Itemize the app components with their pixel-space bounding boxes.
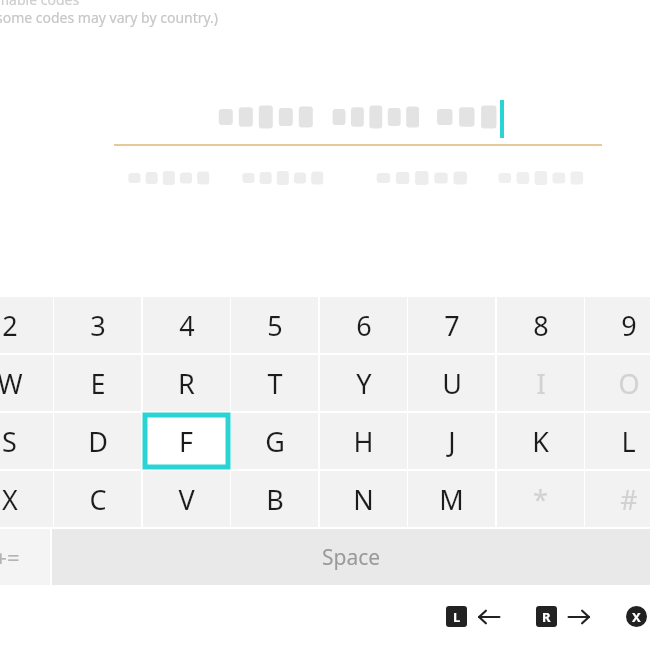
staticText: Space (322, 543, 381, 572)
staticText: L (453, 608, 461, 626)
button[interactable]: R shoulder button (536, 606, 557, 627)
button[interactable]: Move cursor right (566, 604, 592, 630)
staticText: O (618, 365, 640, 402)
staticText: C (89, 481, 107, 518)
button[interactable]: L shoulder button (446, 606, 467, 627)
button[interactable]: Move cursor left (476, 604, 502, 630)
button[interactable]: # (585, 471, 650, 527)
staticText: L (621, 423, 636, 460)
button[interactable]: R (143, 355, 230, 411)
button[interactable]: * (497, 471, 584, 527)
button[interactable]: S (0, 413, 53, 469)
button[interactable]: 9 (585, 297, 650, 353)
staticText: T (267, 365, 283, 402)
staticText: * (533, 481, 548, 518)
button[interactable]: W (0, 355, 53, 411)
staticText: 4 (179, 307, 195, 344)
button[interactable]: E (54, 355, 141, 411)
staticText: R (542, 608, 551, 626)
button[interactable]: L (585, 413, 650, 469)
button[interactable]: += (0, 529, 50, 585)
staticText: 8 (533, 307, 549, 344)
staticText: H (353, 423, 374, 460)
staticText: N (353, 481, 374, 518)
button[interactable]: H (320, 413, 407, 469)
staticText: += (0, 542, 20, 572)
staticText: 6 (356, 307, 372, 344)
button[interactable]: X (0, 471, 53, 527)
staticText: 3 (90, 307, 106, 344)
button[interactable]: C (54, 471, 141, 527)
staticText: J (448, 423, 456, 460)
button[interactable]: I (497, 355, 584, 411)
staticText: R (178, 365, 195, 402)
button[interactable]: 5 (231, 297, 318, 353)
button[interactable]: Space (52, 529, 650, 585)
staticText: 9 (621, 307, 637, 344)
button[interactable]: F (143, 413, 230, 469)
button[interactable]: V (143, 471, 230, 527)
button[interactable]: 6 (320, 297, 407, 353)
button[interactable]: G (231, 413, 318, 469)
staticText: B (266, 481, 284, 518)
staticText: F (179, 423, 194, 460)
staticText: mable codes (0, 0, 80, 9)
button[interactable]: 4 (143, 297, 230, 353)
staticText: E (90, 365, 106, 402)
staticText: M (439, 481, 464, 518)
button[interactable]: D (54, 413, 141, 469)
staticText: U (442, 365, 462, 402)
staticText: # (620, 481, 638, 518)
staticText: some codes may vary by country.) (0, 8, 219, 27)
button[interactable]: J (408, 413, 495, 469)
button[interactable]: X button, delete (626, 606, 647, 627)
button[interactable]: U (408, 355, 495, 411)
staticText: X (2, 481, 18, 518)
staticText: G (265, 423, 285, 460)
staticText: W (0, 365, 23, 402)
button[interactable]: 8 (497, 297, 584, 353)
staticText: 2 (2, 307, 18, 344)
button[interactable]: O (585, 355, 650, 411)
staticText: 5 (267, 307, 283, 344)
staticText: K (532, 423, 549, 460)
button[interactable]: Y (320, 355, 407, 411)
staticText: I (536, 365, 546, 402)
button[interactable]: N (320, 471, 407, 527)
staticText: S (2, 423, 17, 460)
button[interactable]: 2 (0, 297, 53, 353)
button[interactable]: 7 (408, 297, 495, 353)
staticText: V (178, 481, 195, 518)
staticText: D (88, 423, 108, 460)
button[interactable]: B (231, 471, 318, 527)
button[interactable]: T (231, 355, 318, 411)
button[interactable]: 3 (54, 297, 141, 353)
button[interactable]: M (408, 471, 495, 527)
staticText: Y (356, 365, 372, 402)
staticText: 7 (444, 307, 460, 344)
button[interactable]: K (497, 413, 584, 469)
staticText: X (632, 608, 641, 626)
